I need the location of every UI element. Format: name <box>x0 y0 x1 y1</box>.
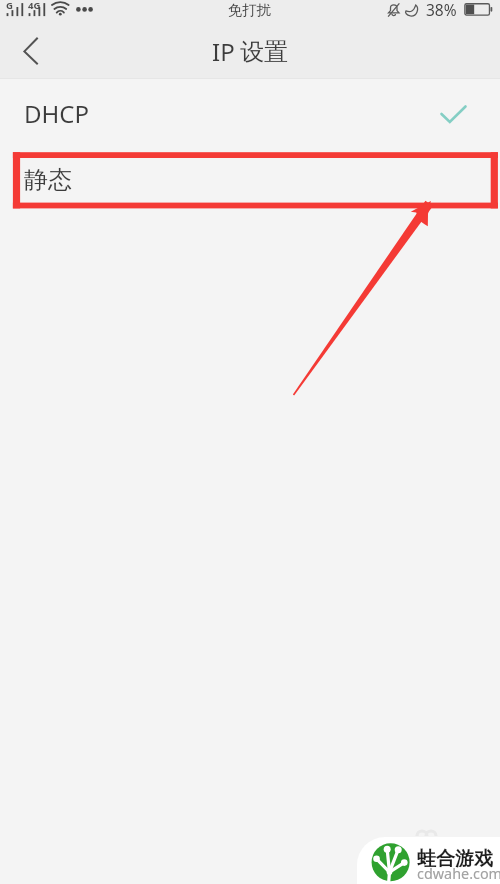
staticText: IP <box>212 35 235 68</box>
button[interactable]: 静态 <box>0 148 500 211</box>
staticText: G <box>6 0 13 12</box>
staticText: 4G <box>28 0 41 12</box>
staticText: 设置 <box>240 37 288 67</box>
staticText: 蛙合游戏 <box>417 847 493 871</box>
staticText: cdwahe.com <box>417 864 500 884</box>
staticText: DHCP <box>24 97 89 130</box>
button[interactable]: Back <box>0 26 56 79</box>
staticText: 静态 <box>24 165 72 195</box>
staticText: 免打扰 <box>228 1 271 19</box>
button[interactable]: DHCP <box>0 79 500 148</box>
staticText: 38% <box>426 0 457 20</box>
